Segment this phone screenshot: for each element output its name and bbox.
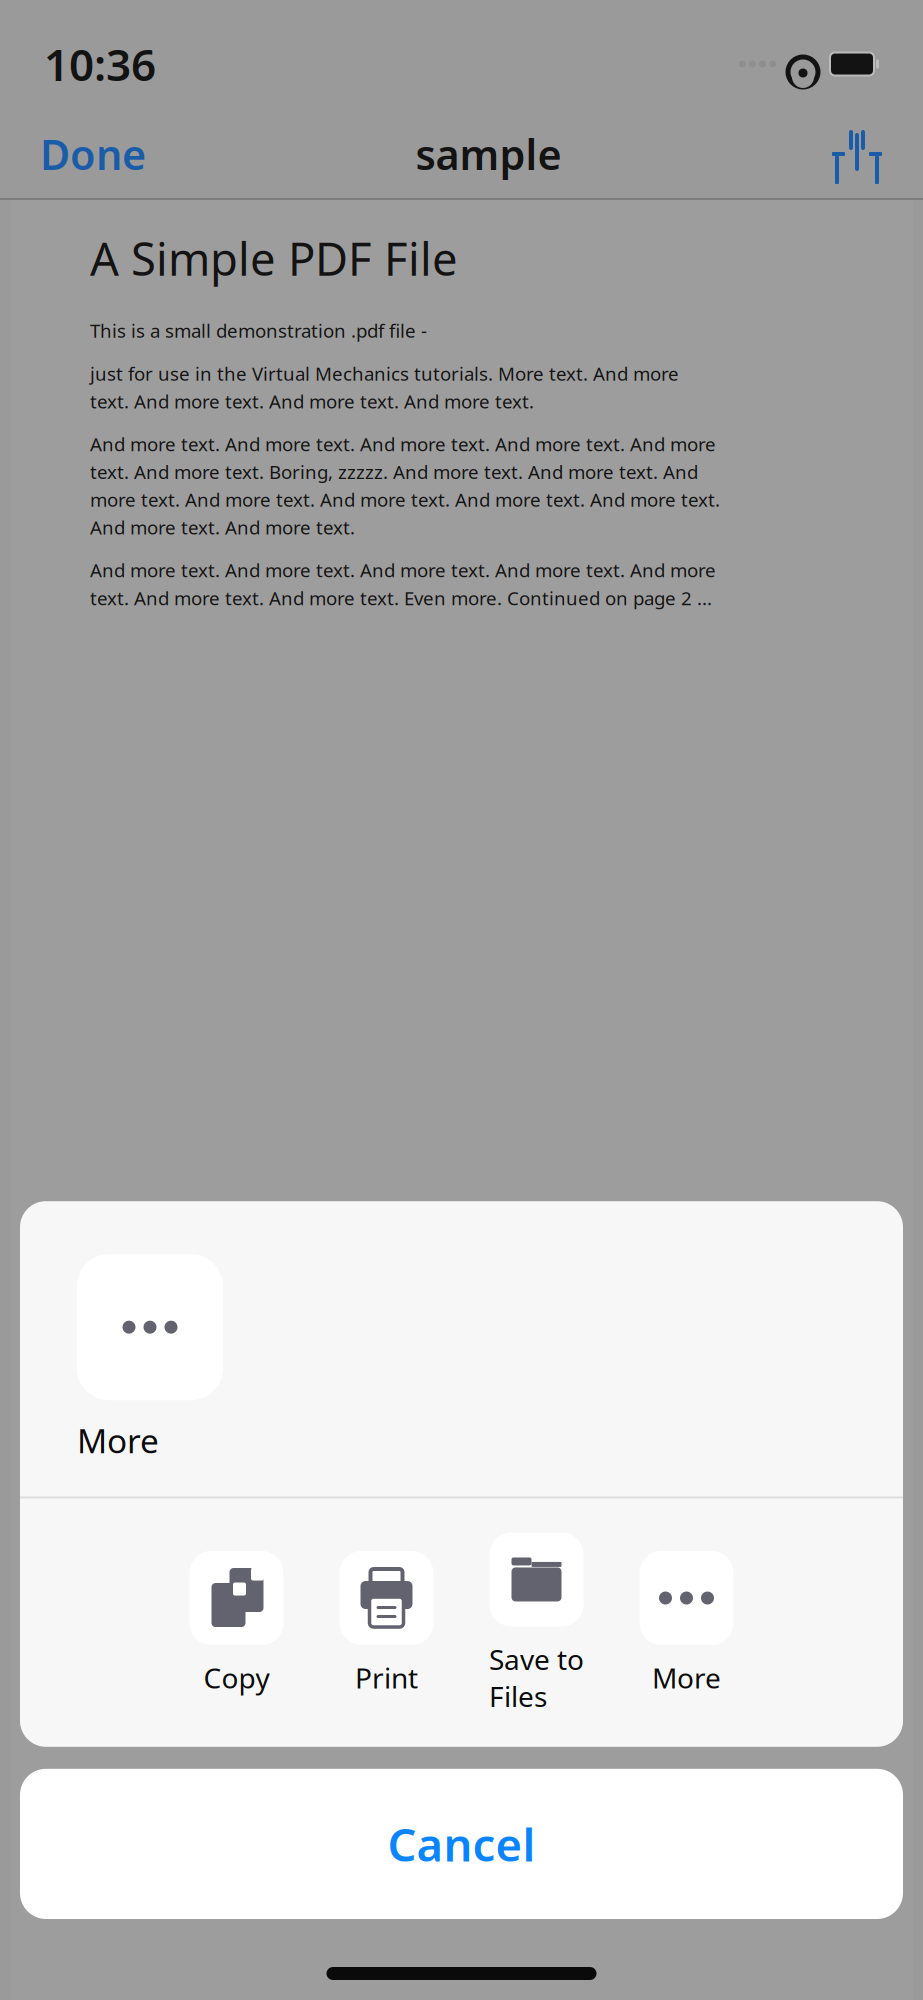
staticText: And more text. And more text. And more t… [90,558,716,582]
staticText: And more text. And more text. [90,515,355,540]
staticText: More [652,1659,721,1696]
button[interactable]: Save to Files [461,1532,611,1715]
staticText: A Simple PDF File [90,228,458,288]
staticText: More [77,1418,159,1462]
staticText: 10:36 [44,35,156,93]
staticText: text. And more text. Boring, zzzzz. And … [90,459,698,484]
button[interactable]: More [77,1254,223,1462]
staticText: This is a small demonstration .pdf file … [90,318,427,343]
staticText: text. And more text. And more text. And … [90,389,534,414]
staticText: text. And more text. And more text. Even… [90,585,712,610]
staticText: just for use in the Virtual Mechanics tu… [90,361,679,386]
staticText: Copy [203,1659,269,1696]
staticText: Print [355,1659,418,1696]
button[interactable]: More [611,1551,761,1696]
staticText: more text. And more text. And more text.… [90,487,720,512]
button[interactable]: Print [311,1551,461,1696]
staticText: Cancel [387,1814,535,1874]
staticText: Done [40,127,146,181]
staticText: sample [415,127,561,181]
button[interactable]: Done [32,117,154,191]
staticText: Save to Files [489,1640,584,1715]
button[interactable]: Cancel [20,1769,903,1919]
button[interactable]: Copy [161,1551,311,1696]
staticText: And more text. And more text. And more t… [90,432,716,456]
button[interactable]: Share [823,127,891,181]
